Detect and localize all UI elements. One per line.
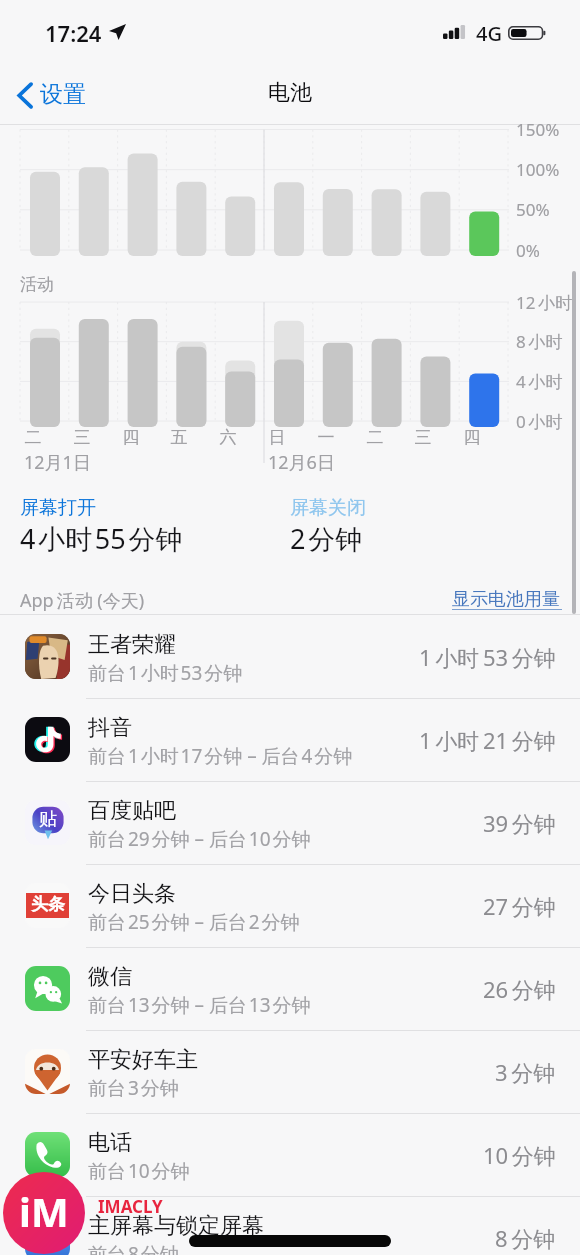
staticText: 四 — [122, 427, 140, 448]
button[interactable]: 抖音 — [0, 698, 580, 781]
staticText: 抖音 — [88, 714, 132, 742]
staticText: 前台 25 分钟 – 后台 2 分钟 — [88, 909, 300, 935]
staticText: 屏幕打开 — [20, 496, 96, 520]
staticText: 三 — [73, 427, 91, 448]
staticText: 12 小时 — [516, 291, 573, 314]
staticText: 0 小时 — [516, 410, 563, 433]
staticText: 王者荣耀 — [88, 631, 176, 659]
staticText: 头条 — [31, 894, 65, 915]
staticText: 12月1日 — [24, 450, 91, 475]
button[interactable]: 电话 — [0, 1113, 580, 1196]
staticText: 四 — [463, 427, 481, 448]
staticText: 1 小时 53 分钟 — [419, 642, 556, 672]
button[interactable]: 头条 — [0, 864, 580, 947]
staticText: 二 — [366, 427, 384, 448]
staticText: iM — [19, 1184, 69, 1238]
staticText: 4 小时 — [516, 370, 563, 393]
staticText: 屏幕关闭 — [290, 496, 366, 520]
staticText: 二 — [24, 427, 42, 448]
staticText: 显示电池用量 — [452, 588, 560, 611]
staticText: 150% — [516, 118, 560, 141]
staticText: 100% — [516, 158, 560, 181]
staticText: App 活动 (今天) — [20, 588, 145, 613]
staticText: 1 小时 21 分钟 — [419, 725, 556, 755]
staticText: 贴 — [39, 808, 57, 831]
staticText: 4G — [476, 20, 502, 47]
staticText: 12月6日 — [268, 450, 335, 475]
button[interactable]: 显示电池用量 — [452, 588, 562, 612]
button[interactable]: 平安好车主 — [0, 1030, 580, 1113]
staticText: 50% — [516, 198, 550, 221]
button[interactable]: 设置 — [17, 81, 86, 110]
staticText: 主屏幕与锁定屏幕 — [88, 1212, 264, 1240]
staticText: 活动 — [20, 274, 54, 295]
staticText: 电话 — [88, 1129, 132, 1157]
staticText: 前台 13 分钟 – 后台 13 分钟 — [88, 992, 311, 1018]
staticText: 2 分钟 — [290, 520, 363, 557]
staticText: 平安好车主 — [88, 1046, 198, 1074]
staticText: 今日头条 — [88, 880, 176, 908]
staticText: 前台 1 小时 17 分钟 – 后台 4 分钟 — [88, 743, 353, 769]
button[interactable]: 主屏幕与锁定屏幕 — [0, 1196, 580, 1255]
staticText: IMACLY — [98, 1195, 163, 1218]
staticText: 六 — [219, 427, 237, 448]
staticText: 日 — [268, 427, 286, 448]
staticText: 三 — [414, 427, 432, 448]
staticText: 前台 10 分钟 — [88, 1158, 190, 1184]
staticText: 39 分钟 — [483, 808, 556, 838]
staticText: 微信 — [88, 963, 132, 991]
staticText: 10 分钟 — [483, 1140, 556, 1170]
staticText: 4 小时 55 分钟 — [20, 520, 183, 557]
staticText: 前台 8 分钟 — [88, 1241, 179, 1255]
staticText: 8 小时 — [516, 330, 563, 353]
staticText: 27 分钟 — [483, 891, 556, 921]
staticText: 五 — [170, 427, 188, 448]
button[interactable]: 王者荣耀 — [0, 615, 580, 698]
staticText: 0% — [516, 239, 540, 262]
staticText: 一 — [317, 427, 335, 448]
staticText: 设置 — [40, 80, 86, 109]
staticText: 26 分钟 — [483, 974, 556, 1004]
staticText: 3 分钟 — [495, 1057, 556, 1087]
staticText: 前台 3 分钟 — [88, 1075, 179, 1101]
button[interactable]: 贴 — [0, 781, 580, 864]
staticText: 前台 29 分钟 – 后台 10 分钟 — [88, 826, 311, 852]
button[interactable]: 微信 — [0, 947, 580, 1030]
staticText: 电池 — [268, 79, 312, 107]
staticText: 前台 1 小时 53 分钟 — [88, 660, 243, 686]
staticText: 百度贴吧 — [88, 797, 176, 825]
staticText: 17:24 — [45, 18, 102, 48]
staticText: 8 分钟 — [495, 1223, 556, 1253]
